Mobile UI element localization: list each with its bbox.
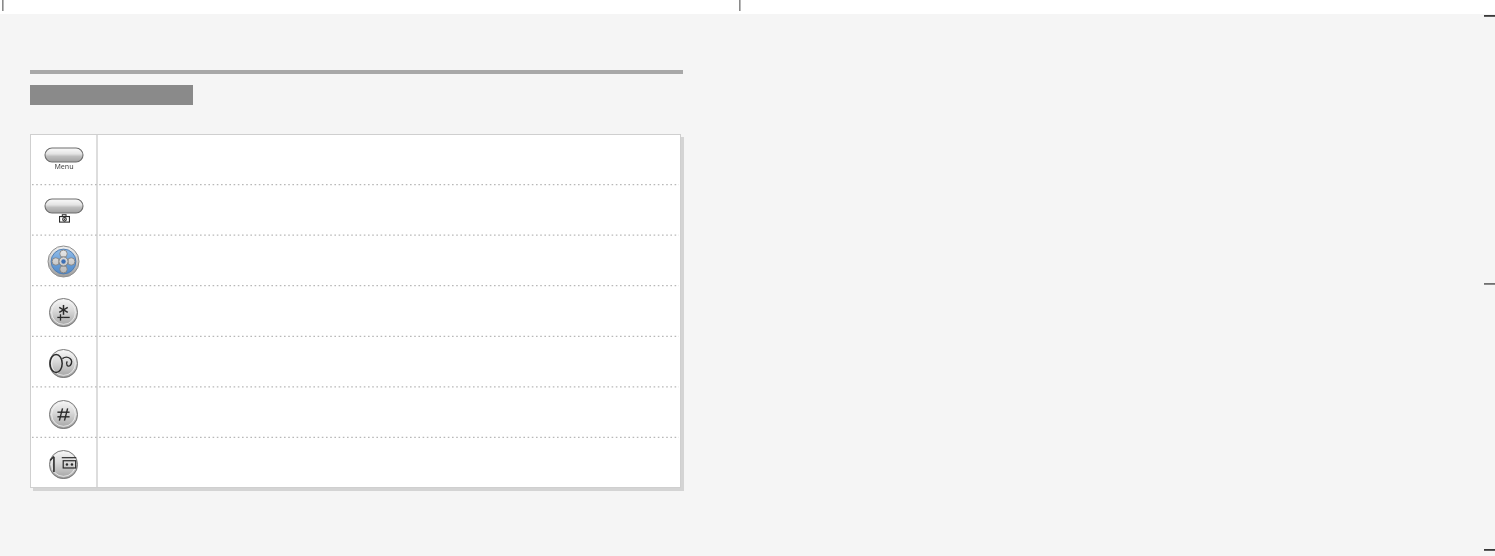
- button[interactable]: Zero key: [49, 349, 78, 378]
- button[interactable]: Star key: [49, 298, 78, 327]
- button[interactable]: Hash key: [49, 400, 78, 429]
- button[interactable]: Camera key: [43, 197, 85, 225]
- button[interactable]: Navigation pad: [48, 246, 79, 277]
- staticText: Menu: [54, 162, 74, 172]
- button[interactable]: Menu key: [43, 146, 85, 174]
- button[interactable]: One key: [49, 450, 78, 479]
